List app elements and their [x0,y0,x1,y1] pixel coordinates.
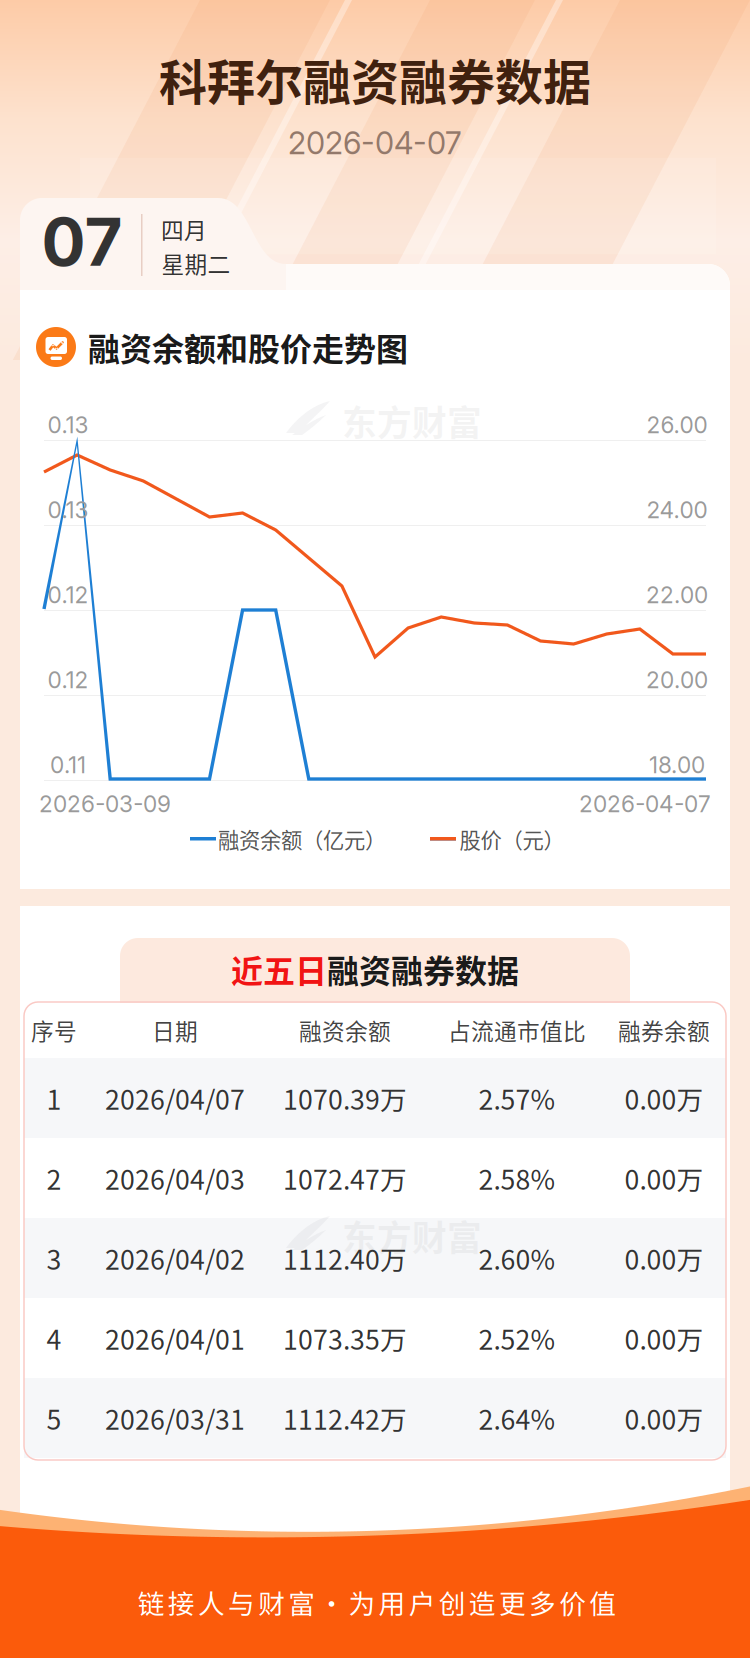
staticText: 0.00万 [624,1239,703,1277]
staticText: 3 [46,1239,61,1277]
staticText: 0.13 [47,496,88,524]
staticText: 26.00 [646,411,707,439]
staticText: 2.52% [478,1319,555,1357]
staticText: 日期 [152,1014,198,1046]
staticText: 0.12 [47,581,88,609]
staticText: 链接人与财富·为用户创造更多价值 [138,1583,616,1621]
staticText: 融券余额 [618,1014,710,1046]
staticText: 2026/03/31 [105,1399,245,1437]
staticText: 0.13 [47,411,88,439]
staticText: 融资余额 [299,1014,391,1046]
staticText: 序号 [31,1014,77,1046]
staticText: 东方财富 [342,1211,482,1261]
staticText: 科拜尔融资融券数据 [159,44,591,114]
staticText: 2026/04/07 [105,1079,245,1117]
staticText: 融资余额（亿元） [218,824,386,854]
staticText: 股价（元） [459,824,564,854]
staticText: 2.60% [478,1239,555,1277]
staticText: 2.64% [478,1399,555,1437]
staticText: 2026/04/02 [105,1239,245,1277]
staticText: 0.00万 [624,1159,703,1197]
staticText: 融资融券数据 [327,946,519,992]
staticText: 1112.42万 [283,1399,407,1437]
staticText: 18.00 [649,751,705,779]
staticText: 0.11 [50,751,86,779]
staticText: 2026-04-07 [288,124,462,161]
staticText: 1070.39万 [283,1079,407,1117]
staticText: 1112.40万 [283,1239,407,1277]
staticText: 4 [46,1319,61,1357]
staticText: 0.00万 [624,1319,703,1357]
staticText: 占流通市值比 [448,1014,586,1046]
staticText: 24.00 [646,496,707,524]
staticText: 20.00 [646,666,708,694]
staticText: 四月 [161,213,207,245]
staticText: 07 [41,202,122,281]
staticText: 2026/04/03 [105,1159,245,1197]
staticText: 5 [46,1399,61,1437]
staticText: 2 [46,1159,61,1197]
staticText: 2.57% [478,1079,555,1117]
staticText: 0.00万 [624,1399,703,1437]
staticText: 2026-03-09 [39,790,171,818]
staticText: 1 [46,1079,61,1117]
staticText: 星期二 [161,247,230,279]
staticText: 0.00万 [624,1079,703,1117]
staticText: 近五日 [231,946,327,992]
staticText: 1072.47万 [283,1159,407,1197]
staticText: 1073.35万 [283,1319,407,1357]
staticText: 22.00 [646,581,708,609]
staticText: 0.12 [47,666,88,694]
staticText: 融资余额和股价走势图 [88,324,408,370]
staticText: 2.58% [478,1159,555,1197]
staticText: 2026-04-07 [579,790,711,818]
staticText: 东方财富 [342,396,482,446]
staticText: 2026/04/01 [105,1319,245,1357]
